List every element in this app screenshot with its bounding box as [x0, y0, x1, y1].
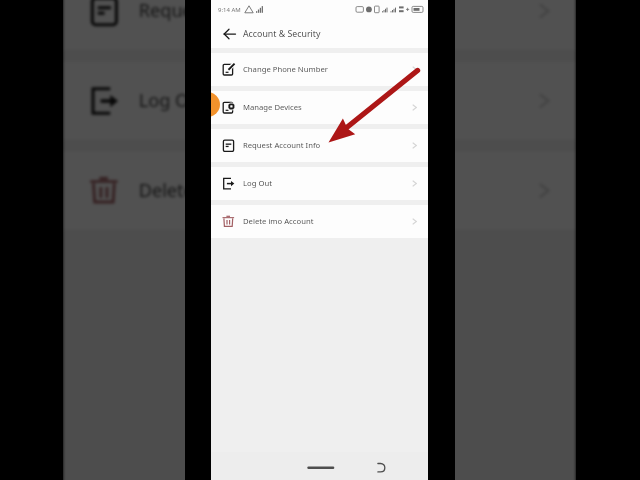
staticText: Request Account Info — [139, 0, 323, 22]
button[interactable]: Log Out — [63, 62, 576, 140]
button[interactable]: Request Account Info — [63, 0, 576, 50]
button[interactable]: Manage Devices — [211, 91, 428, 124]
staticText: Delete imo Account — [243, 216, 314, 226]
button[interactable]: Delete imo Account — [63, 152, 576, 230]
button[interactable]: Change Phone Number — [211, 53, 428, 86]
staticText: Request Account Info — [243, 140, 321, 150]
staticText: Delete imo Account — [139, 178, 306, 201]
staticText: Log Out — [243, 178, 272, 188]
button[interactable]: Delete imo Account — [211, 205, 428, 238]
staticText: Account & Security — [243, 28, 321, 40]
button[interactable]: Back — [222, 26, 238, 42]
staticText: Manage Devices — [243, 102, 302, 112]
staticText: Log Out — [139, 88, 207, 111]
staticText: Change Phone Number — [243, 64, 328, 74]
button[interactable]: Request Account Info — [211, 129, 428, 162]
staticText: 9:14 AM — [218, 6, 241, 14]
button[interactable]: Log Out — [211, 167, 428, 200]
